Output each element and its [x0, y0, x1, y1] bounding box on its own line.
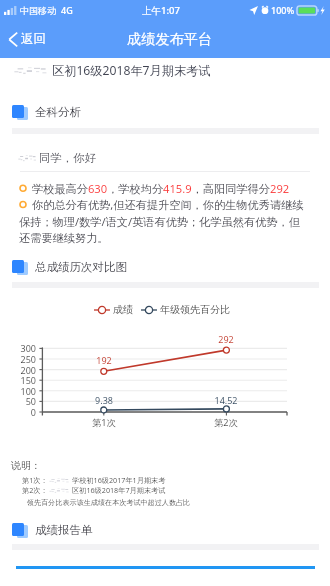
- staticText: 全科分析: [35, 105, 81, 119]
- staticText: 区初16级2018年7月期末考试: [72, 485, 166, 495]
- staticText: 你的总分有优势,但还有提升空间，你的生物优秀请继续保持；物理/数学/语文/英语有…: [19, 197, 311, 245]
- staticText: 领先百分比表示该生成绩在本次考试中超过人数占比: [27, 498, 191, 507]
- staticText: 成绩发布平台: [127, 30, 213, 48]
- staticText: 192: [96, 354, 112, 366]
- staticText: 返回: [21, 31, 46, 47]
- staticText: 9.38: [95, 394, 113, 406]
- staticText: 300: [20, 342, 36, 354]
- staticText: 100%: [271, 4, 295, 16]
- staticText: 学校初16级2017年1月期末考: [72, 475, 166, 485]
- button[interactable]: 全科分析: [0, 100, 330, 124]
- staticText: 第2次：: [22, 485, 48, 495]
- staticText: 292: [218, 333, 234, 345]
- other: Back: [8, 32, 18, 47]
- staticText: 150: [20, 374, 36, 386]
- staticText: 成绩报告单: [35, 523, 93, 537]
- staticText: 14.52: [214, 394, 238, 406]
- staticText: 说明：: [11, 459, 41, 472]
- button[interactable]: 成绩报告单: [0, 518, 330, 542]
- staticText: 200: [20, 364, 36, 376]
- staticText: 4G: [61, 4, 73, 16]
- staticText: 上午1:07: [142, 4, 180, 17]
- button[interactable]: 总成绩历次对比图: [0, 255, 330, 279]
- staticText: 成绩: [113, 303, 133, 316]
- staticText: 250: [20, 353, 36, 365]
- staticText: 50: [25, 395, 36, 407]
- staticText: 第1次: [92, 416, 116, 429]
- staticText: 年级领先百分比: [160, 303, 230, 316]
- staticText: 0: [30, 406, 36, 418]
- staticText: 100: [20, 385, 36, 397]
- staticText: 区初16级2018年7月期末考试: [52, 62, 211, 79]
- staticText: 第1次：: [22, 475, 48, 485]
- staticText: 总成绩历次对比图: [35, 260, 127, 274]
- staticText: 学校最高分630，学校均分415.9，高阳同学得分292: [32, 181, 322, 196]
- staticText: 中国移动: [20, 5, 56, 16]
- staticText: 第2次: [214, 416, 238, 429]
- staticText: 同学，你好: [39, 151, 96, 165]
- button[interactable]: Back: [0, 26, 54, 52]
